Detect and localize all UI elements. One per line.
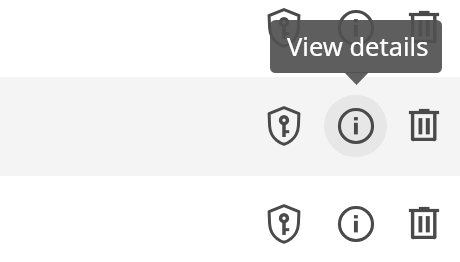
button[interactable]: View details [330, 2, 382, 54]
button[interactable]: View details [330, 198, 382, 250]
button[interactable]: Change password [258, 198, 310, 250]
button[interactable]: Change password [258, 2, 310, 54]
button[interactable]: Change password [258, 100, 310, 152]
button[interactable]: Delete [398, 197, 450, 249]
staticText: View details [287, 29, 429, 64]
button[interactable]: Delete [398, 99, 450, 151]
button[interactable]: Delete [398, 1, 450, 53]
button[interactable]: View details [330, 100, 382, 152]
